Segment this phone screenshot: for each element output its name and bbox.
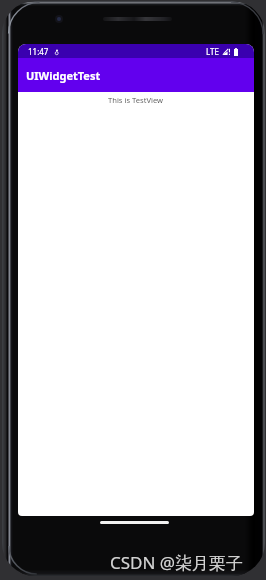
staticText: 11:47 <box>28 46 49 57</box>
staticText: CSDN @柒月栗子 <box>110 551 244 574</box>
staticText: UIWidgetTest <box>26 68 101 83</box>
staticText: LTE <box>206 46 219 57</box>
staticText: This is TestView <box>108 95 164 105</box>
